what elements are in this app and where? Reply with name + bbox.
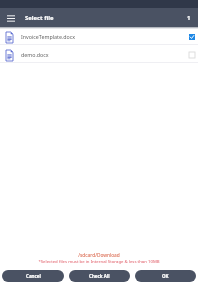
button[interactable]: demo.docx <box>0 45 198 63</box>
button[interactable]: Open navigation menu <box>5 12 16 23</box>
staticText: /sdcard/Download <box>0 252 198 259</box>
staticText: Cancel <box>26 273 41 279</box>
button[interactable]: InvoiceTemplate.docx <box>0 27 198 45</box>
staticText: *Selected files must be in Internal Stor… <box>0 258 198 264</box>
staticText: Select file <box>25 14 54 22</box>
button[interactable]: Selected <box>186 31 196 41</box>
staticText: Check All <box>89 273 110 279</box>
staticText: OK <box>162 273 169 279</box>
staticText: demo.docx <box>21 51 49 58</box>
button[interactable]: Cancel <box>2 270 64 282</box>
staticText: InvoiceTemplate.docx <box>21 33 76 40</box>
button[interactable]: Check All <box>69 270 130 282</box>
button[interactable]: Not selected <box>186 49 196 59</box>
button[interactable]: OK <box>135 270 196 282</box>
staticText: 1 <box>187 14 191 22</box>
